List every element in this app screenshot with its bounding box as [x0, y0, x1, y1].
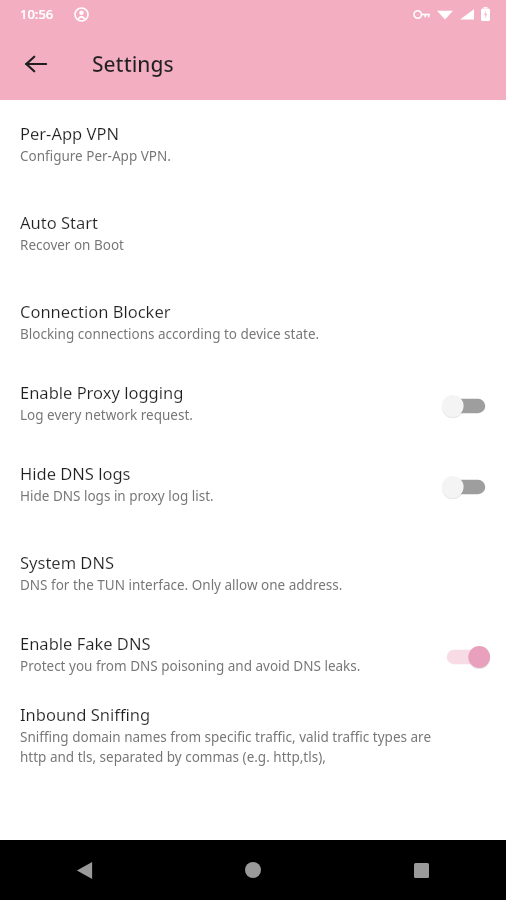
button[interactable]: Inbound Sniffing: [0, 675, 506, 766]
staticText: Configure Per-App VPN.: [20, 147, 171, 165]
button[interactable]: Enable Fake DNS: [0, 594, 506, 675]
staticText: Log every network request.: [20, 406, 193, 424]
button[interactable]: Toggle off: [440, 389, 492, 423]
staticText: 10:56: [20, 5, 54, 23]
button[interactable]: Back: [0, 840, 168, 900]
staticText: Blocking connections according to device…: [20, 325, 320, 343]
staticText: Per-App VPN: [20, 122, 119, 144]
button[interactable]: Connection Blocker: [0, 254, 506, 343]
button[interactable]: Per-App VPN: [0, 100, 506, 165]
staticText: Settings: [92, 50, 174, 79]
button[interactable]: Toggle on: [440, 640, 492, 674]
staticText: Protect you from DNS poisoning and avoid…: [20, 657, 361, 675]
staticText: Recover on Boot: [20, 236, 124, 254]
staticText: Enable Proxy logging: [20, 381, 184, 403]
button[interactable]: Hide DNS logs: [0, 424, 506, 505]
button[interactable]: Auto Start: [0, 165, 506, 254]
staticText: System DNS: [20, 551, 115, 573]
staticText: Connection Blocker: [20, 300, 171, 322]
staticText: DNS for the TUN interface. Only allow on…: [20, 576, 343, 594]
button[interactable]: Back: [14, 42, 58, 86]
button[interactable]: Home: [168, 840, 337, 900]
button[interactable]: Recents: [337, 840, 506, 900]
staticText: Sniffing domain names from specific traf…: [20, 728, 440, 766]
staticText: Auto Start: [20, 211, 99, 233]
button[interactable]: System DNS: [0, 505, 506, 594]
staticText: Hide DNS logs in proxy log list.: [20, 487, 214, 505]
staticText: Hide DNS logs: [20, 462, 131, 484]
button[interactable]: Enable Proxy logging: [0, 343, 506, 424]
staticText: Inbound Sniffing: [20, 703, 151, 725]
button[interactable]: Toggle off: [440, 470, 492, 504]
staticText: Enable Fake DNS: [20, 632, 151, 654]
